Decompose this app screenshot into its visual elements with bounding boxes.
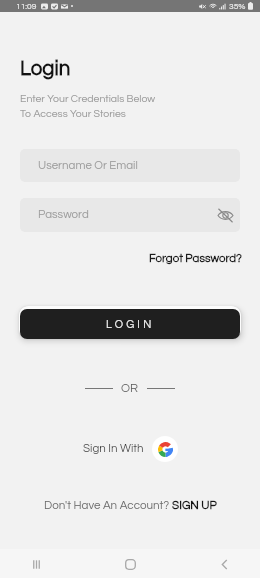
button[interactable]: SIGN UP [172, 499, 217, 511]
staticText: Username Or Email [38, 160, 138, 172]
button[interactable]: Recent apps [22, 550, 50, 578]
staticText: Login [20, 58, 71, 79]
staticText: Sign In With [83, 443, 144, 455]
staticText: LOGIN [106, 319, 155, 330]
staticText: Enter Your Credentials Below To Access Y… [20, 93, 156, 119]
button[interactable]: LOGIN [20, 309, 240, 339]
staticText: 35% [229, 2, 246, 11]
button[interactable]: Sign In With [0, 436, 260, 462]
staticText: OR [121, 382, 139, 394]
button[interactable]: Forgot Password? [149, 253, 242, 265]
staticText: 11:09 [16, 2, 37, 11]
button[interactable]: Password [20, 198, 240, 232]
button[interactable]: Home [116, 550, 144, 578]
staticText: Password [38, 209, 89, 221]
staticText: Don't Have An Account? [44, 499, 172, 511]
button[interactable]: Back [210, 550, 238, 578]
button[interactable]: Username Or Email [20, 149, 240, 182]
button[interactable]: Show password [213, 203, 237, 227]
